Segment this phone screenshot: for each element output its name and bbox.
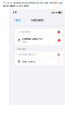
button[interactable]: Living Room xyxy=(15,29,63,35)
staticText: Living Room xyxy=(18,31,30,33)
button[interactable]: Bedroom Lamp Pro xyxy=(15,35,63,45)
button[interactable]: Hallway Switch xyxy=(15,51,63,58)
button[interactable]: New Device xyxy=(15,58,63,65)
staticText: New Device xyxy=(22,60,35,63)
staticText: 9:41 xyxy=(12,11,16,14)
staticText: Add Device xyxy=(31,19,43,22)
button[interactable]: Cancel xyxy=(13,18,21,23)
staticText: A list of accessories discovered on the … xyxy=(2,2,62,4)
staticText: Ready xyxy=(22,41,27,43)
staticText: AVAILABLE xyxy=(17,48,26,50)
staticText: can be added to this home. xyxy=(2,5,29,7)
staticText: Hallway Switch xyxy=(18,53,35,56)
staticText: Bedroom Lamp Pro xyxy=(22,38,42,40)
staticText: Cancel xyxy=(13,19,20,22)
